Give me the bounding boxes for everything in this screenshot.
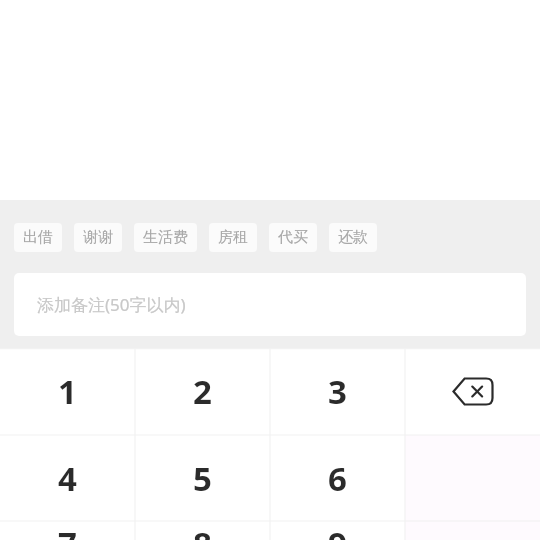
staticText: 还款 bbox=[338, 228, 368, 247]
staticText: 4 bbox=[58, 456, 77, 501]
button[interactable]: 4 bbox=[0, 435, 135, 521]
button[interactable]: 代买 bbox=[269, 223, 317, 252]
button[interactable]: 3 bbox=[270, 348, 405, 435]
button[interactable]: 出借 bbox=[14, 223, 62, 252]
button[interactable]: 2 bbox=[135, 348, 270, 435]
button[interactable]: 5 bbox=[135, 435, 270, 521]
button[interactable]: 1 bbox=[0, 348, 135, 435]
button[interactable]: Backspace bbox=[405, 348, 540, 435]
staticText: 添加备注(50字以内) bbox=[37, 293, 186, 316]
staticText: 2 bbox=[193, 369, 212, 414]
staticText: 出借 bbox=[23, 228, 53, 247]
staticText: 5 bbox=[193, 456, 212, 501]
button[interactable]: 房租 bbox=[209, 223, 257, 252]
staticText: 9 bbox=[328, 521, 347, 540]
staticText: 7 bbox=[58, 521, 77, 540]
staticText: 6 bbox=[328, 456, 347, 501]
staticText: 代买 bbox=[278, 228, 308, 247]
staticText: 生活费 bbox=[143, 228, 188, 247]
staticText: 房租 bbox=[218, 228, 248, 247]
staticText: 3 bbox=[328, 369, 347, 414]
button[interactable]: 生活费 bbox=[134, 223, 197, 252]
button[interactable]: 9 bbox=[270, 521, 405, 540]
staticText: 谢谢 bbox=[83, 228, 113, 247]
staticText: 8 bbox=[193, 521, 212, 540]
staticText: 1 bbox=[58, 369, 77, 414]
button[interactable]: 7 bbox=[0, 521, 135, 540]
button[interactable]: 谢谢 bbox=[74, 223, 122, 252]
button[interactable]: 还款 bbox=[329, 223, 377, 252]
button[interactable]: 添加备注(50字以内) bbox=[14, 273, 526, 336]
button[interactable]: 8 bbox=[135, 521, 270, 540]
button[interactable]: 6 bbox=[270, 435, 405, 521]
